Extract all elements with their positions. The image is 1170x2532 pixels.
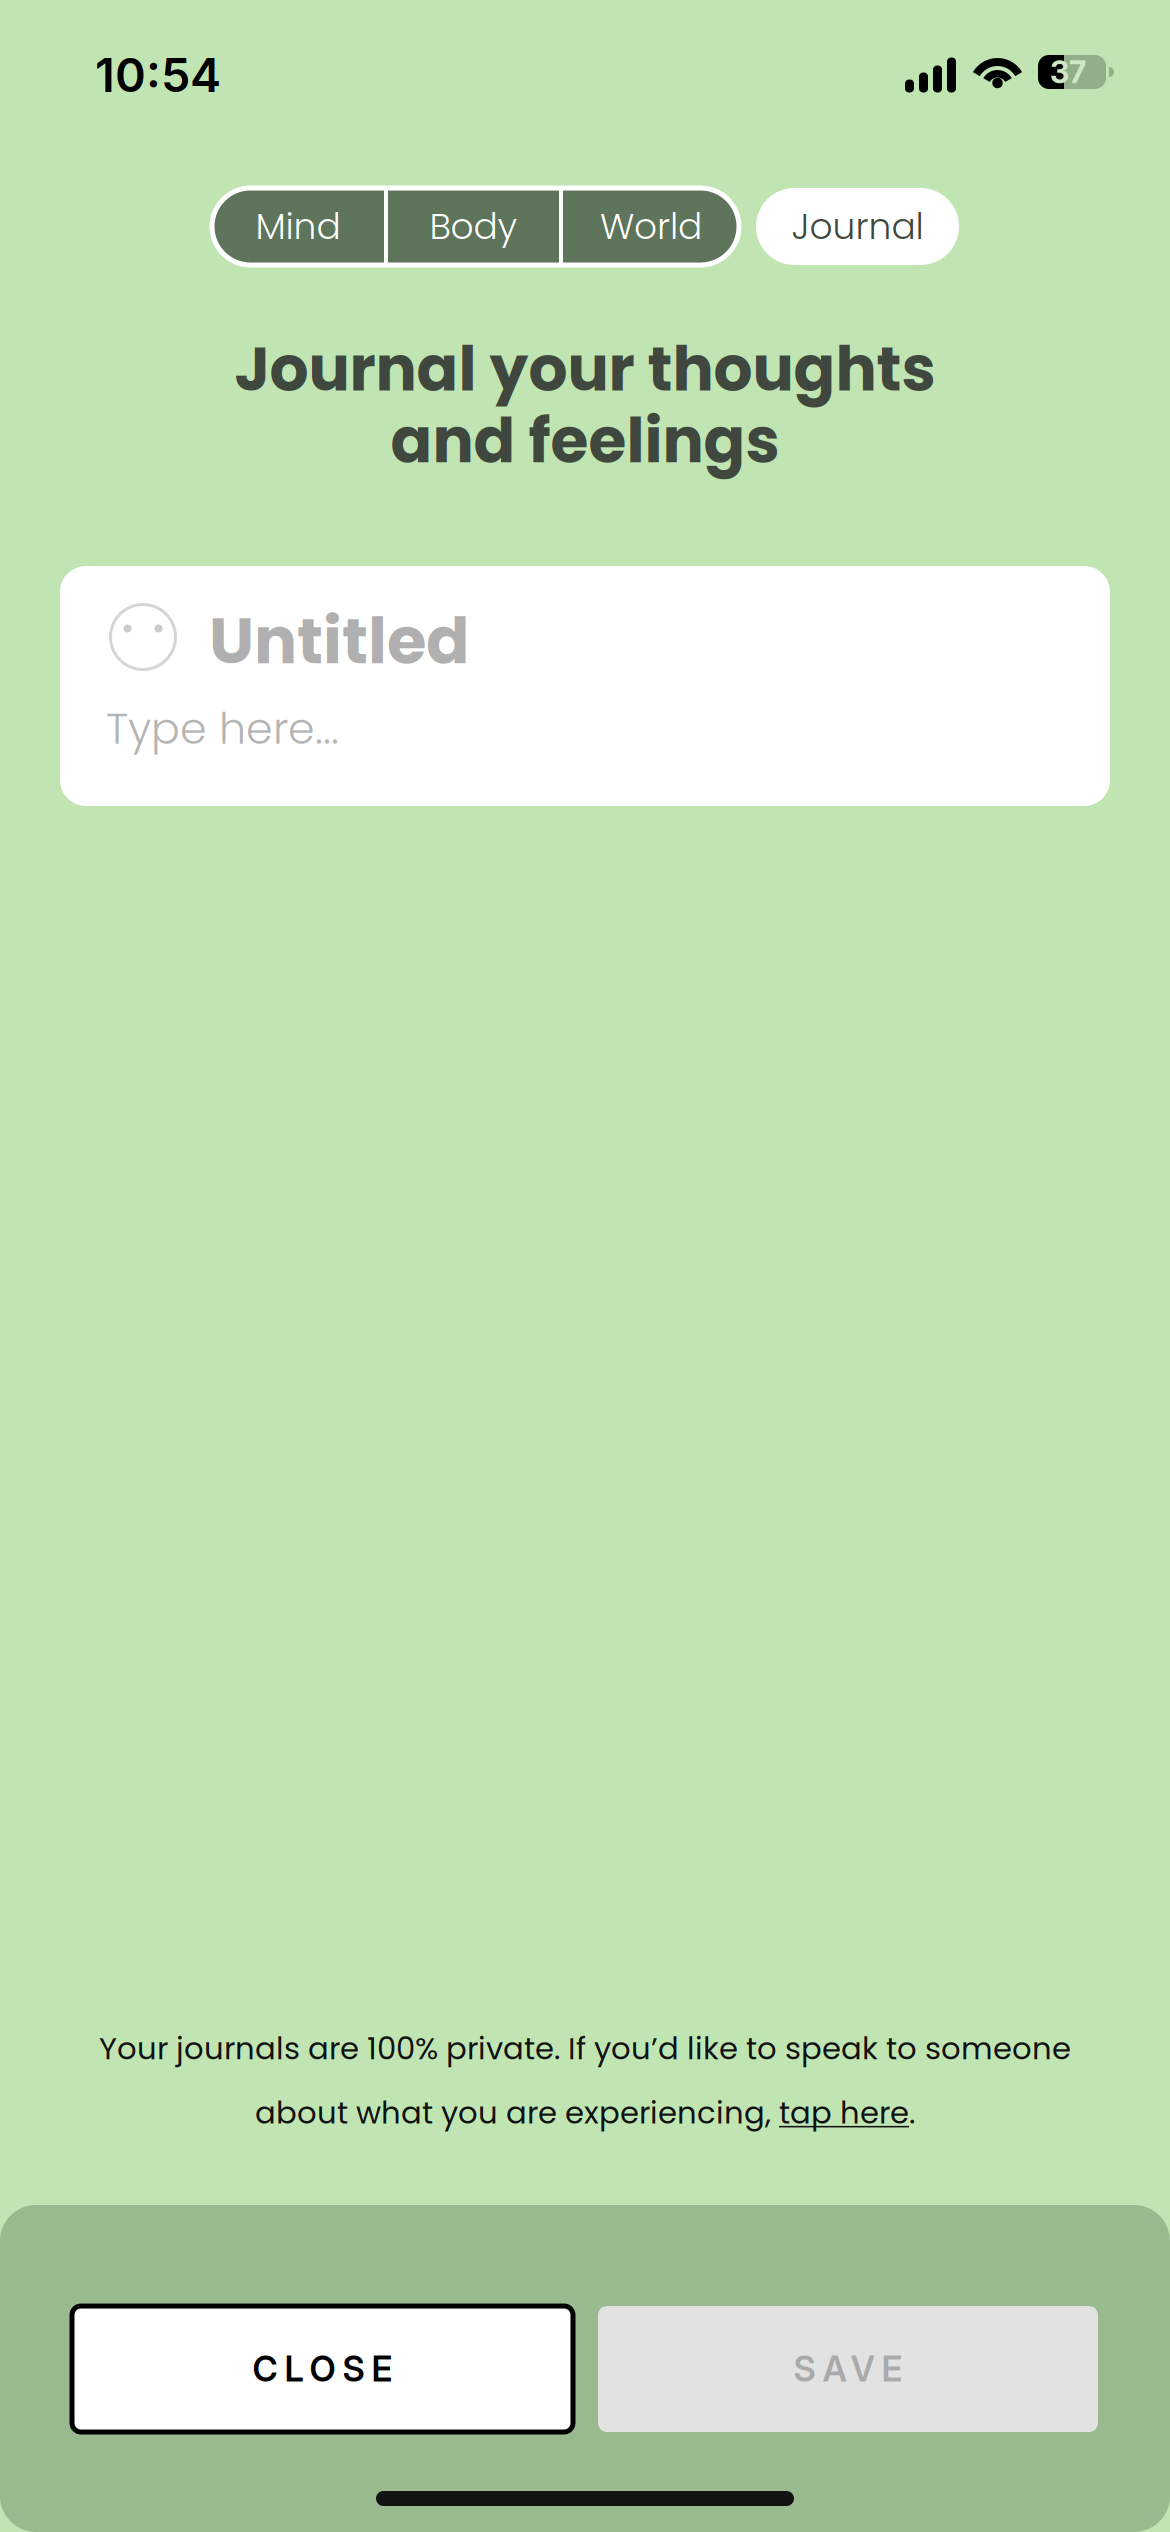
staticText: and feelings	[390, 398, 779, 484]
staticText: CLOSE	[252, 2348, 392, 2390]
staticText: SAVE	[793, 2348, 902, 2390]
button[interactable]: World	[563, 188, 739, 265]
staticText: Your journals are 100% private. If you’d…	[99, 2027, 1071, 2070]
staticText: Body	[429, 201, 517, 252]
button[interactable]: Body	[388, 188, 559, 265]
staticText: Mind	[255, 201, 340, 252]
staticText: World	[600, 201, 702, 252]
staticText: 10:54	[95, 47, 221, 103]
staticText: about what you are experiencing, tap her…	[255, 2092, 915, 2134]
button[interactable]: CLOSE	[72, 2306, 573, 2432]
button[interactable]: SAVE	[598, 2306, 1098, 2432]
staticText: Journal your thoughts	[234, 326, 935, 412]
staticText: Journal	[791, 201, 923, 252]
button[interactable]: Journal	[756, 188, 959, 265]
button[interactable]: Mind	[212, 188, 384, 265]
staticText: Untitled	[209, 596, 469, 686]
staticText: 37	[1050, 53, 1086, 90]
staticText: Type here...	[106, 699, 339, 759]
